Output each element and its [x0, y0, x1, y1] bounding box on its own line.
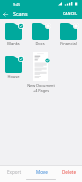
staticText: New Document +4 Pages [27, 83, 55, 93]
button[interactable]: Back [1, 10, 9, 18]
staticText: 9:45 [13, 2, 21, 7]
staticText: Docs [35, 41, 45, 46]
button[interactable]: Move [28, 166, 55, 177]
button[interactable]: Docs [27, 20, 55, 47]
staticText: Scans [13, 10, 28, 17]
staticText: Financial [60, 41, 77, 46]
staticText: Move [36, 169, 48, 175]
button[interactable]: Financial [55, 20, 82, 47]
button[interactable] [28, 50, 54, 93]
staticText: Delete [62, 169, 76, 175]
staticText: CANCEL [63, 11, 78, 16]
staticText: Blanks [7, 41, 20, 46]
button[interactable]: CANCEL [62, 9, 79, 18]
button[interactable]: Delete [55, 166, 82, 177]
staticText: House [7, 74, 20, 79]
button[interactable]: Blanks [0, 20, 28, 47]
button[interactable]: House [0, 53, 28, 80]
staticText: Export [7, 169, 22, 175]
button[interactable]: Export [0, 166, 28, 177]
